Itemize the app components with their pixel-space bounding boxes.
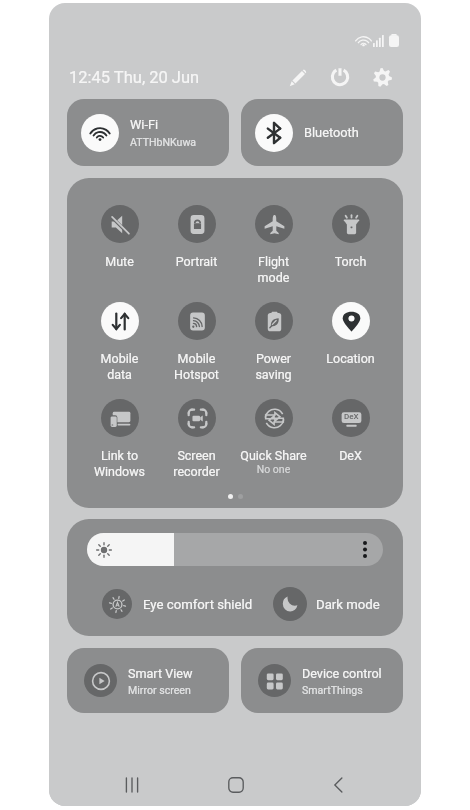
button[interactable]: Eye comfort shield: [102, 585, 253, 623]
staticText: SmartThings: [302, 684, 363, 696]
staticText: Portrait: [158, 254, 235, 269]
button[interactable]: Smart View: [67, 648, 229, 713]
button[interactable]: Device control: [241, 648, 403, 713]
staticText: Device control: [302, 666, 382, 681]
staticText: Smart View: [128, 666, 193, 681]
button[interactable]: Home: [184, 754, 287, 806]
staticText: Power saving: [235, 351, 312, 383]
button[interactable]: Torch: [312, 205, 389, 269]
button[interactable]: Quick Share: [235, 399, 312, 475]
button[interactable]: Mobile Hotspot: [158, 302, 235, 383]
staticText: 12:45 Thu, 20 Jun: [69, 68, 200, 87]
button[interactable]: Recents: [80, 754, 184, 806]
button[interactable]: Brightness: [87, 533, 383, 566]
button[interactable]: Back: [287, 754, 390, 806]
staticText: Flight mode: [235, 254, 312, 286]
staticText: Mute: [81, 254, 158, 269]
staticText: DeX: [312, 448, 389, 463]
button[interactable]: Power saving: [235, 302, 312, 383]
staticText: No one: [235, 463, 312, 475]
staticText: Wi-Fi: [130, 117, 159, 132]
button[interactable]: Flight mode: [235, 205, 312, 286]
staticText: DeX: [344, 412, 359, 421]
button[interactable]: Location: [312, 302, 389, 366]
button[interactable]: DeX: [312, 399, 389, 463]
staticText: Quick Share: [235, 448, 312, 463]
button[interactable]: Power: [322, 59, 358, 95]
staticText: ATTHbNKuwa: [130, 136, 197, 148]
staticText: Torch: [312, 254, 389, 269]
staticText: Bluetooth: [304, 125, 359, 140]
button[interactable]: Wi-Fi: [67, 99, 229, 166]
button[interactable]: Screen recorder: [158, 399, 235, 479]
staticText: Mirror screen: [128, 684, 191, 696]
button[interactable]: Mobile data: [81, 302, 158, 383]
button[interactable]: Link to Windows: [81, 399, 158, 479]
staticText: Mobile data: [81, 351, 158, 383]
button[interactable]: Bluetooth: [241, 99, 403, 166]
button[interactable]: Mute: [81, 205, 158, 269]
button[interactable]: Settings: [364, 59, 400, 95]
staticText: Link to Windows: [81, 448, 158, 479]
button[interactable]: Dark mode: [273, 585, 380, 623]
staticText: Screen recorder: [158, 448, 235, 479]
staticText: Location: [312, 351, 389, 366]
button[interactable]: Portrait: [158, 205, 235, 269]
staticText: Dark mode: [316, 597, 380, 612]
staticText: Mobile Hotspot: [158, 351, 235, 383]
staticText: Eye comfort shield: [143, 597, 253, 612]
button[interactable]: Edit: [280, 59, 316, 95]
